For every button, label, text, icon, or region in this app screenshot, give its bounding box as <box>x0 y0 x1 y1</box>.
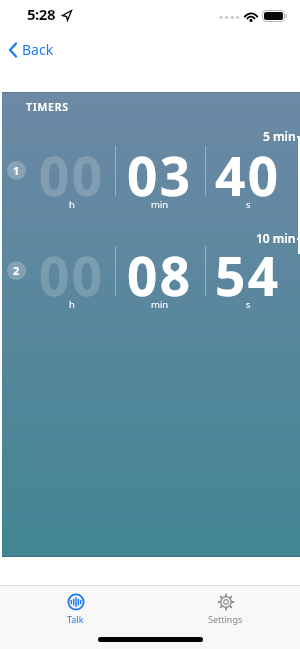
staticText: Back <box>22 40 54 59</box>
staticText: 10 min <box>256 230 296 246</box>
staticText: 00 <box>39 139 105 207</box>
staticText: 5:28 <box>27 4 55 24</box>
staticText: 54 <box>215 239 281 307</box>
staticText: s <box>246 198 251 211</box>
staticText: TIMERS <box>26 100 69 114</box>
button[interactable]: Back <box>6 38 56 61</box>
staticText: h <box>69 298 75 311</box>
staticText: Talk <box>67 613 84 625</box>
button[interactable]: 2 <box>7 261 26 280</box>
staticText: 03 <box>127 139 193 207</box>
staticText: 5 min <box>263 128 296 144</box>
staticText: 2 <box>13 263 20 278</box>
button[interactable]: Settings <box>195 593 256 633</box>
staticText: Settings <box>208 613 243 625</box>
staticText: s <box>246 298 251 311</box>
staticText: 00 <box>39 239 105 307</box>
staticText: min <box>151 198 169 211</box>
staticText: min <box>151 298 169 311</box>
button[interactable]: 1 <box>7 161 26 180</box>
staticText: h <box>69 198 75 211</box>
staticText: 40 <box>215 139 281 207</box>
button[interactable]: Talk <box>45 593 106 633</box>
staticText: 08 <box>127 239 193 307</box>
staticText: 1 <box>13 163 20 178</box>
